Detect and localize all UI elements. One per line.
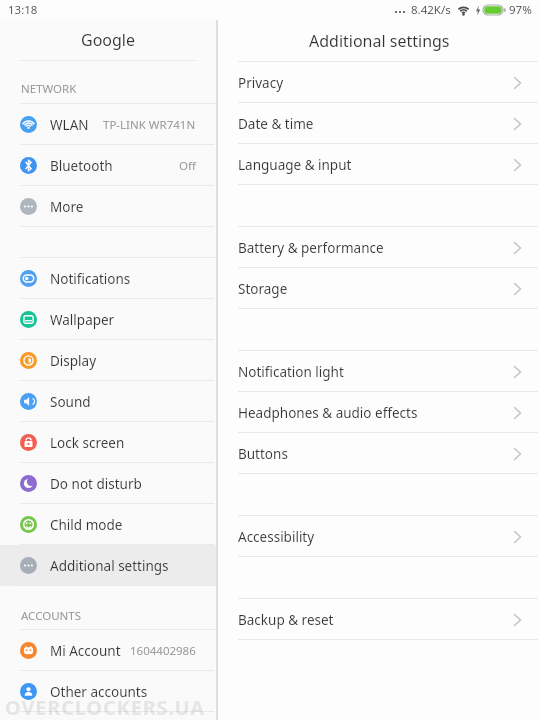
staticText: More bbox=[50, 198, 196, 216]
staticText: Do not disturb bbox=[50, 475, 196, 493]
staticText: Wallpaper bbox=[50, 311, 196, 329]
staticText: TP-LINK WR741N bbox=[103, 117, 196, 133]
staticText: Privacy bbox=[238, 74, 513, 92]
staticText: 1604402986 bbox=[130, 643, 196, 659]
staticText: Storage bbox=[238, 280, 513, 298]
staticText: WLAN bbox=[50, 116, 103, 134]
staticText: Buttons bbox=[238, 445, 513, 463]
staticText: Bluetooth bbox=[50, 157, 179, 175]
staticText: 13:18 bbox=[8, 2, 38, 18]
staticText: Sound bbox=[50, 393, 196, 411]
staticText: Notification light bbox=[238, 363, 513, 381]
staticText: Headphones & audio effects bbox=[238, 404, 513, 422]
staticText: Additional settings bbox=[309, 30, 450, 52]
staticText: Display bbox=[50, 352, 196, 370]
staticText: Lock screen bbox=[50, 434, 196, 452]
staticText: NETWORK bbox=[21, 81, 77, 97]
staticText: Notifications bbox=[50, 270, 196, 288]
staticText: Backup & reset bbox=[238, 611, 513, 629]
staticText: OVERCLOCKERS.UA bbox=[5, 694, 205, 720]
staticText: Battery & performance bbox=[238, 239, 513, 257]
staticText: Mi Account bbox=[50, 642, 130, 660]
staticText: 97% bbox=[509, 2, 532, 18]
staticText: Other accounts bbox=[50, 683, 196, 701]
staticText: Additional settings bbox=[50, 557, 196, 575]
staticText: Off bbox=[179, 158, 196, 174]
staticText: Language & input bbox=[238, 156, 513, 174]
staticText: Date & time bbox=[238, 115, 513, 133]
staticText: ACCOUNTS bbox=[21, 608, 82, 624]
staticText: Accessibility bbox=[238, 528, 513, 546]
staticText: Child mode bbox=[50, 516, 196, 534]
staticText: 8.42K/s bbox=[411, 2, 451, 18]
staticText: Google bbox=[81, 29, 136, 51]
